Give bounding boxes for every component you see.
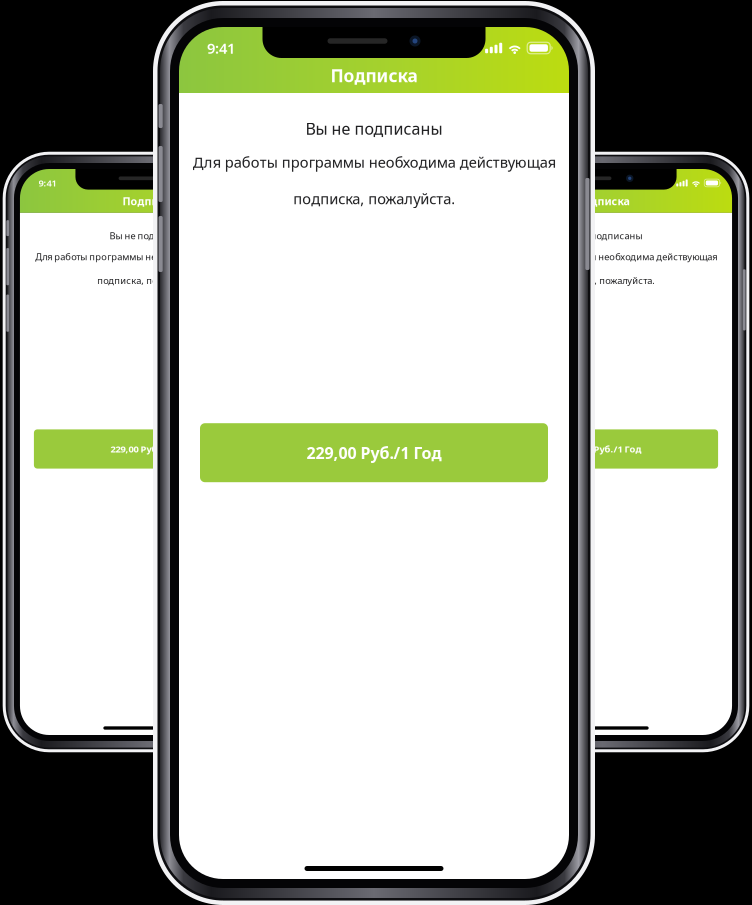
staticText: 9:41 xyxy=(207,38,235,58)
staticText: Подписка xyxy=(330,64,417,87)
staticText: Для работы программы необходима действую… xyxy=(488,250,717,287)
staticText: Вы не подписаны xyxy=(109,229,189,242)
staticText: Для работы программы необходима действую… xyxy=(192,152,555,208)
button[interactable]: 229,00 Руб./1 Год xyxy=(200,423,548,482)
staticText: 229,00 Руб./1 Год xyxy=(563,443,641,455)
staticText: 229,00 Руб./1 Год xyxy=(306,442,441,463)
button[interactable]: 229,00 Руб./1 Год xyxy=(487,429,718,469)
staticText: Для работы программы необходима действую… xyxy=(35,250,264,287)
staticText: 229,00 Руб./1 Год xyxy=(110,443,188,455)
staticText: Подписка xyxy=(122,194,176,208)
staticText: Подписка xyxy=(575,194,629,208)
staticText: 9:41 xyxy=(39,177,57,189)
button[interactable]: 229,00 Руб./1 Год xyxy=(34,429,265,469)
staticText: Вы не подписаны xyxy=(305,118,442,139)
staticText: Вы не подписаны xyxy=(562,229,642,242)
